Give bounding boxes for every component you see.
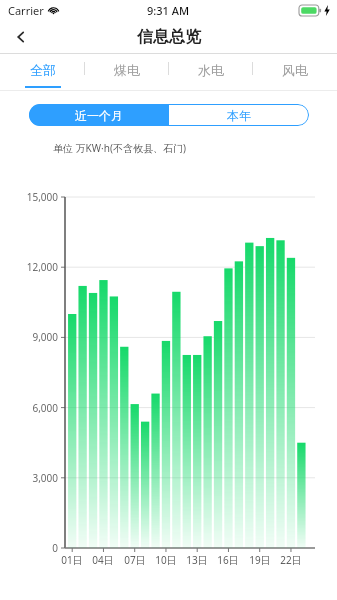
- button[interactable]: 本年: [169, 104, 309, 126]
- button[interactable]: 水电: [169, 54, 253, 91]
- staticText: 6,000: [0, 401, 58, 415]
- staticText: 15,000: [0, 190, 58, 204]
- staticText: 信息总览: [137, 27, 201, 47]
- staticText: 单位 万KW·h(不含攸县、石门): [53, 141, 186, 155]
- staticText: 3,000: [0, 471, 58, 485]
- staticText: 22日: [275, 553, 307, 567]
- button[interactable]: 煤电: [85, 54, 169, 91]
- staticText: 04日: [87, 553, 119, 567]
- button[interactable]: 全部: [0, 54, 85, 91]
- staticText: 13日: [181, 553, 213, 567]
- staticText: 10日: [150, 553, 182, 567]
- staticText: 19日: [244, 553, 276, 567]
- staticText: 全部: [30, 62, 56, 78]
- button[interactable]: 近一个月: [29, 104, 169, 126]
- staticText: 9:31 AM: [147, 3, 190, 18]
- staticText: 风电: [282, 62, 308, 78]
- staticText: 16日: [212, 553, 244, 567]
- staticText: 12,000: [0, 260, 58, 274]
- staticText: 01日: [56, 553, 88, 567]
- staticText: 本年: [227, 108, 251, 123]
- button[interactable]: Back: [0, 20, 42, 54]
- staticText: 07日: [119, 553, 151, 567]
- staticText: 水电: [198, 62, 224, 78]
- staticText: 煤电: [114, 62, 140, 78]
- staticText: Carrier: [8, 3, 44, 18]
- staticText: 0: [0, 541, 58, 555]
- staticText: 近一个月: [75, 108, 123, 123]
- staticText: 9,000: [0, 330, 58, 344]
- button[interactable]: 风电: [253, 54, 337, 91]
